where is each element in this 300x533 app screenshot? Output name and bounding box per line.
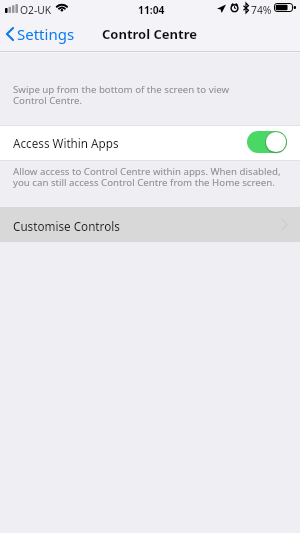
staticText: Swipe up from the bottom of the screen t… <box>13 83 230 107</box>
button[interactable]: Access Within Apps, on <box>247 131 287 153</box>
staticText: Allow access to Control Centre within ap… <box>13 165 281 189</box>
button[interactable]: Access Within Apps <box>0 126 300 160</box>
staticText: O2-UK <box>20 3 52 17</box>
button[interactable]: Settings <box>0 20 81 48</box>
staticText: Settings <box>17 24 75 44</box>
staticText: Access Within Apps <box>13 135 119 151</box>
staticText: 74% <box>251 3 272 17</box>
staticText: Control Centre <box>102 25 198 43</box>
button[interactable]: Customise Controls <box>0 207 300 242</box>
staticText: 11:04 <box>138 3 165 17</box>
staticText: Customise Controls <box>13 218 120 234</box>
